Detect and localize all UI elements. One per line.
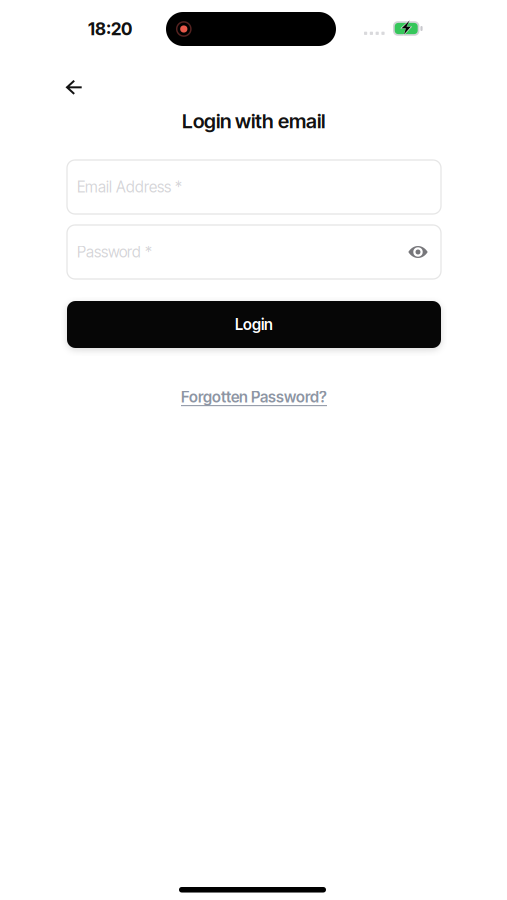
staticText: 18:20 [88,18,132,39]
button[interactable]: Show password [397,231,439,273]
staticText: Login [235,315,273,334]
staticText: Password * [77,243,152,261]
button[interactable]: Back [52,67,96,107]
button[interactable]: Email Address * [67,160,441,214]
button[interactable]: Password * [67,225,441,279]
staticText: Forgotten Password? [181,388,327,406]
staticText: Email Address * [77,178,182,196]
staticText: Login with email [182,109,325,133]
button[interactable]: Forgotten Password? [178,386,330,408]
button[interactable]: Login [67,301,441,348]
